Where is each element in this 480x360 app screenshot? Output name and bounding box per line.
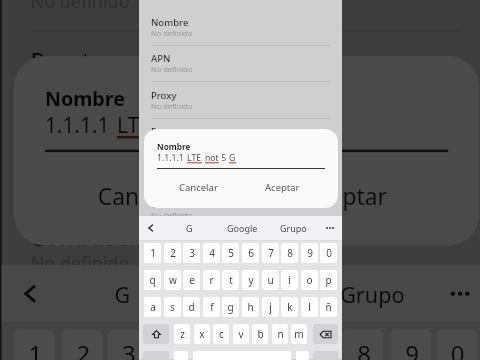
button[interactable]: Contrasena — [139, 196, 342, 232]
button[interactable]: m — [291, 324, 307, 344]
button[interactable]: o — [301, 270, 318, 290]
button[interactable]: APN — [139, 50, 342, 86]
button[interactable]: t — [222, 270, 239, 290]
staticText: Google — [213, 279, 287, 308]
button[interactable]: G — [59, 265, 184, 322]
button[interactable]: p — [320, 270, 337, 290]
button[interactable]: a — [144, 297, 161, 317]
button[interactable]: q — [144, 270, 161, 290]
button[interactable]: f — [203, 297, 220, 317]
staticText: 4 — [209, 246, 215, 260]
staticText: No definido — [151, 64, 193, 74]
staticText: No definido — [30, 0, 131, 13]
button[interactable]: e — [183, 270, 200, 290]
button[interactable]: ñ — [320, 297, 337, 317]
staticText: s — [170, 300, 175, 314]
staticText: LTE — [187, 152, 202, 164]
button[interactable]: Google — [216, 216, 268, 240]
button[interactable]: n — [272, 324, 288, 344]
button[interactable]: h — [242, 297, 259, 317]
button[interactable]: Comma — [174, 351, 188, 360]
button[interactable]: 7 — [262, 243, 279, 263]
button[interactable]: k — [281, 297, 298, 317]
staticText: No definido — [151, 28, 193, 38]
button[interactable]: Backspace — [313, 324, 338, 344]
button[interactable]: Proxy — [2, 0, 480, 42]
button[interactable]: 5 — [222, 243, 239, 263]
button[interactable]: 3 — [107, 330, 148, 360]
staticText: ñ — [325, 300, 332, 314]
button[interactable]: 4 — [155, 330, 196, 360]
button[interactable]: i — [281, 270, 298, 290]
button[interactable]: b — [252, 324, 268, 344]
button[interactable]: Back — [139, 216, 163, 240]
button[interactable]: 2 — [164, 243, 181, 263]
staticText: 1 — [28, 337, 42, 360]
button[interactable]: 0 — [320, 243, 337, 263]
button[interactable]: 2 — [62, 330, 102, 360]
button[interactable]: Nombre — [139, 14, 342, 50]
button[interactable]: 9 — [301, 243, 318, 263]
button[interactable]: Back — [2, 265, 59, 322]
button[interactable]: Nombre de usuario — [139, 160, 342, 196]
button[interactable]: 4 — [203, 243, 220, 263]
staticText: Contrasena — [151, 198, 204, 211]
button[interactable]: w — [164, 270, 181, 290]
staticText: Nombre — [45, 85, 126, 111]
staticText: 5 — [215, 337, 230, 360]
button[interactable]: Nombre de usuario — [2, 130, 480, 217]
button[interactable]: 9 — [390, 330, 431, 360]
button[interactable]: v — [233, 324, 249, 344]
button[interactable]: x — [194, 324, 210, 344]
button[interactable]: Cancelar — [66, 171, 220, 219]
button[interactable]: 8 — [342, 330, 383, 360]
button[interactable]: Period — [296, 351, 309, 360]
button[interactable]: Google — [186, 265, 311, 322]
staticText: Google — [227, 222, 258, 234]
staticText: z — [180, 327, 185, 341]
staticText: No definido — [30, 250, 131, 274]
button[interactable]: 3 — [183, 243, 200, 263]
button[interactable]: 5 — [201, 330, 242, 360]
button[interactable]: More options — [317, 216, 342, 240]
staticText: 1 — [150, 246, 156, 260]
button[interactable]: l — [301, 297, 318, 317]
button[interactable]: c — [213, 324, 229, 344]
button[interactable]: Aceptar — [268, 171, 422, 219]
button[interactable]: y — [242, 270, 259, 290]
button[interactable]: Puerto — [2, 42, 480, 128]
button[interactable]: r — [203, 270, 220, 290]
button[interactable]: More options — [429, 265, 480, 322]
button[interactable]: d — [183, 297, 200, 317]
staticText: Aceptar — [304, 181, 388, 212]
button[interactable]: Shift — [143, 324, 169, 344]
button[interactable]: 8 — [281, 243, 298, 263]
button[interactable]: 1 — [14, 330, 54, 360]
staticText: g — [227, 300, 234, 314]
button[interactable]: Cancelar — [166, 177, 230, 197]
button[interactable]: Contrasena — [2, 217, 480, 303]
button[interactable]: G — [163, 216, 215, 240]
staticText: 8 — [357, 337, 371, 360]
button[interactable]: 7 — [297, 330, 338, 360]
button[interactable]: g — [222, 297, 239, 317]
button[interactable]: 6 — [249, 330, 290, 360]
button[interactable]: Grupo — [309, 265, 434, 322]
button[interactable]: Proxy — [139, 87, 342, 123]
button[interactable]: Grupo — [267, 216, 319, 240]
button[interactable]: Puerto — [139, 123, 342, 159]
button[interactable]: 0 — [436, 330, 477, 360]
button[interactable]: Aceptar — [250, 177, 314, 197]
button[interactable]: j — [262, 297, 279, 317]
staticText: y — [248, 273, 254, 287]
button[interactable]: z — [174, 324, 190, 344]
button[interactable]: s — [164, 297, 181, 317]
staticText: Grupo — [280, 222, 307, 234]
button[interactable]: 1 — [144, 243, 161, 263]
button[interactable]: 6 — [242, 243, 259, 263]
button[interactable]: u — [262, 270, 279, 290]
staticText: b — [257, 327, 264, 341]
